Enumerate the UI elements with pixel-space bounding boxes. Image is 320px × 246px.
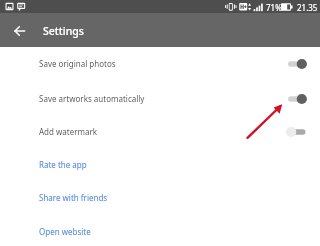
button[interactable]: Share with friends [0,181,320,214]
button[interactable]: Save original photos [0,47,320,80]
button[interactable]: Back [6,17,33,44]
staticText: Open website [39,226,91,237]
button[interactable]: Save artworks automatically [0,82,320,115]
staticText: Add watermark [39,126,98,137]
staticText: Save original photos [39,58,116,69]
staticText: Rate the app [39,159,87,170]
staticText: Share with friends [39,192,108,203]
staticText: Save artworks automatically [39,93,145,104]
staticText: 21.35 [297,2,318,13]
staticText: Settings [43,24,84,38]
button[interactable]: Rate the app [0,148,320,181]
staticText: 71% [266,2,282,13]
button[interactable]: Add watermark [0,115,320,148]
button[interactable]: Open website [0,215,320,246]
